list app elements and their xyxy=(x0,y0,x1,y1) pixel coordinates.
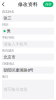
staticText: 保存 xyxy=(45,2,51,6)
staticText: 真实姓名 xyxy=(2,9,14,14)
staticText: 所在城市 xyxy=(2,48,14,53)
staticText: 朝阳区建国路8号 xyxy=(3,68,33,73)
staticText: 手机号码 xyxy=(2,35,14,40)
staticText: 男 xyxy=(7,29,11,34)
staticText: 张三 xyxy=(3,16,11,21)
staticText: 请输入手机号 xyxy=(3,42,27,47)
staticText: 详细地址 xyxy=(2,61,14,66)
button[interactable]: 保存 xyxy=(43,1,53,7)
staticText: 填写备注信息 xyxy=(3,87,27,92)
staticText: 北京市 xyxy=(3,55,15,60)
staticText: 备注 xyxy=(2,74,8,79)
button[interactable]: 返回 xyxy=(0,0,7,9)
staticText: 修改资料 xyxy=(18,1,38,7)
staticText: 性别 xyxy=(2,22,8,27)
